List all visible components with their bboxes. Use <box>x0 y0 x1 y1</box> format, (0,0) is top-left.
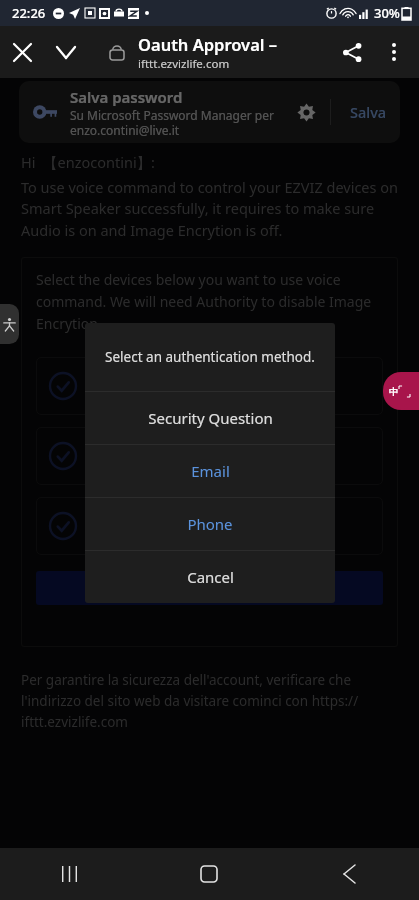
button[interactable]: Translate <box>383 372 419 410</box>
staticText: Su Microsoft Password Manager per enzo.c… <box>70 107 283 138</box>
staticText: Phone <box>187 514 233 534</box>
button[interactable]: Site information <box>102 37 132 67</box>
staticText: Cancel <box>187 567 234 587</box>
staticText: ifttt.ezvizlife.com <box>138 56 230 72</box>
staticText: Salva password <box>70 87 183 107</box>
button[interactable] <box>36 497 383 555</box>
staticText: Oauth Approval – Sprin… <box>138 33 327 55</box>
button[interactable]: Salva <box>337 81 400 143</box>
button[interactable]: Close <box>0 30 44 74</box>
staticText: 22:26 <box>12 4 46 22</box>
button[interactable] <box>36 427 383 485</box>
button[interactable]: Email <box>85 445 335 497</box>
staticText: Select the devices below you want to use… <box>36 270 383 333</box>
staticText: Security Question <box>148 408 273 428</box>
button[interactable]: More options <box>373 31 415 73</box>
button[interactable] <box>36 357 383 415</box>
button[interactable]: Phone <box>85 498 335 550</box>
staticText: 30% <box>374 4 400 22</box>
button[interactable]: Recent apps <box>0 848 139 900</box>
button[interactable]: Accessibility <box>0 304 19 344</box>
staticText: Email <box>191 461 230 481</box>
staticText: Hi 【enzocontini】: <box>21 152 156 172</box>
button[interactable]: Expand <box>44 30 88 74</box>
staticText: Salva <box>350 102 387 122</box>
staticText: Per garantire la sicurezza dell'account,… <box>21 671 398 731</box>
button[interactable]: Back <box>279 848 419 900</box>
button[interactable]: Settings <box>289 95 323 129</box>
button[interactable]: Home <box>139 848 279 900</box>
button[interactable]: Cancel <box>85 551 335 603</box>
button[interactable] <box>36 571 383 605</box>
staticText: To use voice command to control your EZV… <box>21 177 398 241</box>
staticText: 中 <box>389 386 398 397</box>
staticText: Select an authentication method. <box>105 348 315 366</box>
button[interactable]: Security Question <box>85 392 335 444</box>
button[interactable]: Share <box>331 31 373 73</box>
